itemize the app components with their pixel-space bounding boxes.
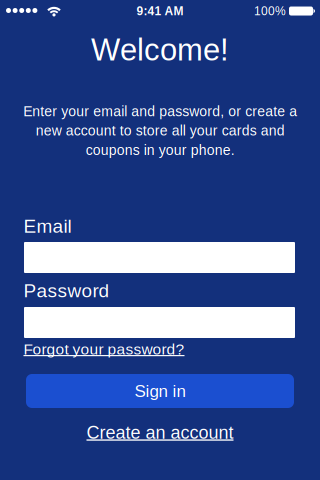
staticText: 9:41 AM [136, 4, 183, 18]
button[interactable]: Sign in [26, 374, 294, 408]
button[interactable]: Create an account [0, 422, 320, 443]
staticText: Email [23, 215, 71, 237]
staticText: Sign in [134, 381, 185, 400]
button[interactable]: Forgot your password? [23, 340, 184, 358]
staticText: Welcome! [91, 32, 229, 67]
staticText: Forgot your password? [23, 340, 184, 358]
staticText: Password [23, 280, 109, 301]
staticText: 100% [254, 4, 286, 18]
staticText: Create an account [86, 422, 233, 443]
staticText: Enter your email and password, or create… [23, 103, 297, 158]
